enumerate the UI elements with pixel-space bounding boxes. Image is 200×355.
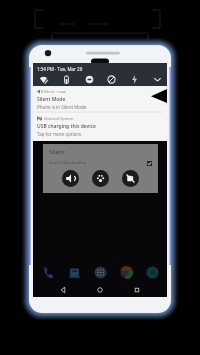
button[interactable]: Messages [64,262,84,282]
button[interactable]: Battery [59,72,73,86]
button[interactable]: Phone [38,262,58,282]
button[interactable]: Back [56,283,70,297]
button[interactable]: Vibrate [92,170,109,187]
button[interactable]: Flashlight [127,72,141,86]
staticText: Silent [49,148,66,156]
button[interactable]: Do not disturb [82,72,96,86]
button[interactable]: Recents [130,283,144,297]
button[interactable]: Apps [90,262,110,282]
button[interactable]: Wi-Fi [36,72,50,86]
button[interactable]: Silent [122,170,139,187]
staticText: Phone is in Silent Mode [37,104,87,110]
staticText: 1:54 PM · Tue, Mar 20 [37,66,83,72]
button[interactable]: Camera [142,262,162,282]
button[interactable]: Sound [62,170,79,187]
button[interactable]: Home [93,283,107,297]
staticText: Tap for more options [37,131,82,137]
staticText: Silent • now [44,89,66,94]
button[interactable]: Expand [150,72,164,86]
staticText: Silent Mode [37,96,66,103]
button[interactable]: Silent • now [33,86,167,112]
button[interactable]: Auto rotate [104,72,118,86]
staticText: Android System [44,116,74,121]
button[interactable]: Enable Notification [49,160,152,166]
button[interactable]: Chrome [116,262,136,282]
staticText: USB charging this device [37,123,96,130]
button[interactable]: Android System [33,113,167,139]
staticText: Enable Notification [49,160,87,166]
